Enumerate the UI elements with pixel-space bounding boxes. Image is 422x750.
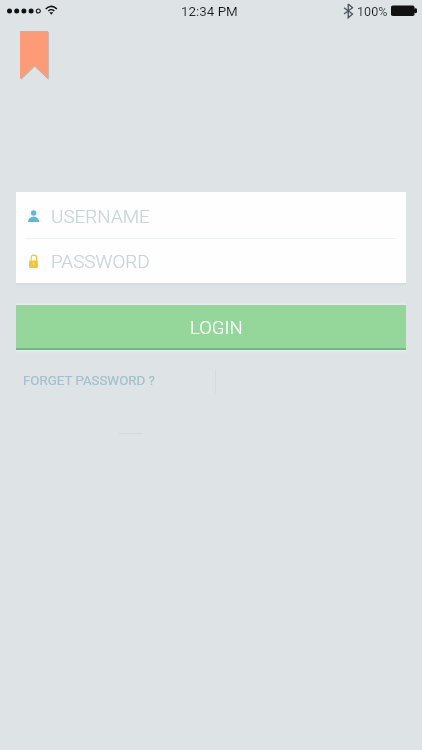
button[interactable]: USERNAME: [16, 192, 406, 238]
staticText: USERNAME: [51, 205, 150, 227]
button[interactable]: LOGIN: [16, 305, 406, 348]
other: Bluetooth: [344, 4, 353, 18]
other: App logo: [20, 31, 48, 79]
staticText: 100%: [357, 4, 388, 19]
button[interactable]: FORGET PASSWORD ?: [23, 373, 155, 389]
staticText: FORGET PASSWORD ?: [23, 373, 155, 389]
staticText: LOGIN: [190, 317, 243, 339]
other: Battery full: [391, 5, 418, 17]
button[interactable]: PASSWORD: [16, 239, 406, 283]
staticText: 12:34 PM: [181, 4, 238, 20]
staticText: PASSWORD: [51, 250, 150, 272]
